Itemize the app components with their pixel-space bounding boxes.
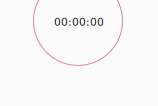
button[interactable]: Timer 00:00:00 bbox=[0, 0, 158, 106]
staticText: 00:00:00 bbox=[54, 16, 104, 28]
